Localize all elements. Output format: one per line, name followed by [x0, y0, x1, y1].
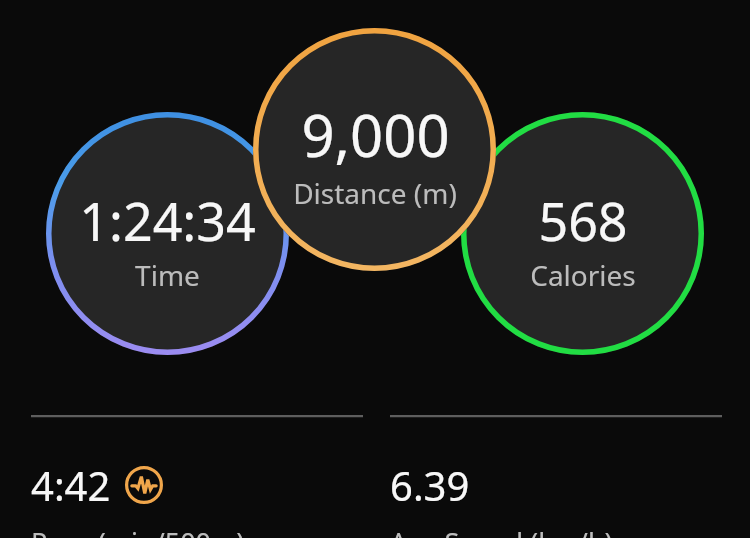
staticText: Distance (m) [293, 174, 457, 212]
staticText: 568 [538, 185, 628, 256]
staticText: 4:42 [31, 458, 111, 512]
button[interactable]: 6.39 [390, 415, 722, 538]
staticText: Time [135, 256, 200, 294]
button[interactable]: Heart rate based pace [125, 466, 163, 504]
button[interactable]: 4:42 [31, 415, 363, 538]
staticText: Avg Speed (km/h) [390, 524, 613, 538]
staticText: 6.39 [390, 458, 470, 512]
staticText: 9,000 [301, 95, 450, 174]
button[interactable]: 1:24:34 [46, 112, 289, 355]
button[interactable]: 9,000 [253, 28, 496, 271]
button[interactable]: 568 [461, 112, 704, 355]
staticText: 1:24:34 [79, 185, 256, 256]
staticText: Calories [530, 256, 636, 294]
staticText: Pace (min/500m) [31, 524, 245, 538]
